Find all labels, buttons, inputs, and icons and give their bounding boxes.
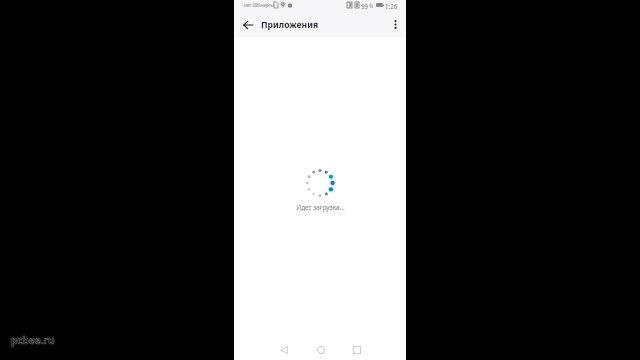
button[interactable]: More options — [385, 14, 406, 35]
button[interactable]: Recent apps — [348, 341, 366, 359]
button[interactable]: Home — [312, 341, 330, 359]
staticText: 1:26 — [385, 2, 398, 10]
staticText: 99 — [361, 2, 369, 10]
button[interactable]: Back — [237, 14, 258, 35]
button[interactable]: Back — [275, 341, 293, 359]
staticText: Идет загрузка... — [296, 203, 345, 212]
staticText: pcbee.ru — [11, 333, 55, 347]
staticText: нет SIM-карты — [244, 2, 274, 8]
staticText: pcbee.ru — [11, 333, 55, 347]
staticText: Приложения — [261, 19, 319, 31]
staticText: % — [369, 2, 374, 9]
